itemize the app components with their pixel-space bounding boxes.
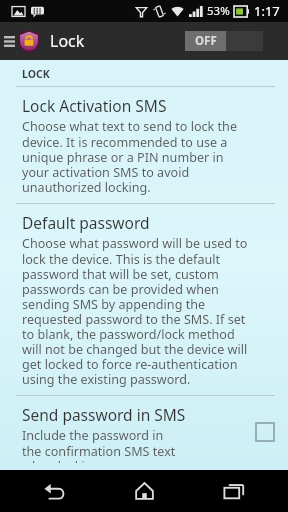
staticText: LOCK xyxy=(22,67,50,81)
button[interactable]: Default password xyxy=(0,204,288,395)
staticText: Choose what text to send to lock the dev… xyxy=(22,118,246,196)
button[interactable]: Navigation drawer xyxy=(0,22,18,60)
button[interactable]: Lock toggle, off xyxy=(185,31,263,51)
staticText: Choose what password will be used to loc… xyxy=(22,235,254,388)
staticText: Default password xyxy=(22,212,150,233)
button[interactable]: Lock Activation SMS xyxy=(0,87,288,203)
staticText: Send password in SMS xyxy=(22,404,186,425)
staticText: Lock Activation SMS xyxy=(22,95,167,116)
staticText: Include the password in the confirmation… xyxy=(22,427,184,463)
button[interactable]: Home xyxy=(108,470,180,512)
button[interactable]: Back xyxy=(18,470,90,512)
staticText: Lock xyxy=(50,30,85,52)
staticText: 1:17 xyxy=(254,2,280,20)
staticText: 53% xyxy=(207,3,230,19)
button[interactable]: Recent apps xyxy=(198,470,270,512)
staticText: OFF xyxy=(195,33,217,49)
button[interactable]: Send password in SMS xyxy=(0,396,288,470)
